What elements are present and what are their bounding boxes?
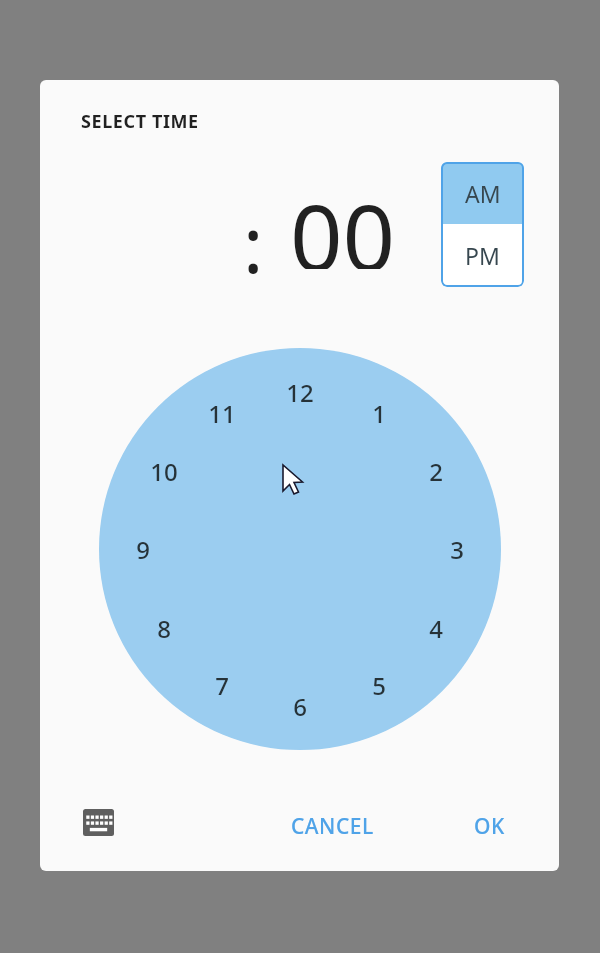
button[interactable]: 00	[290, 183, 405, 279]
staticText: 5	[372, 669, 386, 702]
staticText: 4	[429, 612, 443, 645]
button[interactable]: AM	[441, 162, 524, 224]
staticText: 7	[215, 669, 229, 702]
staticText: SELECT TIME	[81, 109, 199, 134]
staticText: AM	[465, 178, 501, 209]
staticText: 00	[290, 173, 396, 269]
staticText: 11	[208, 397, 236, 430]
staticText: :	[243, 192, 264, 296]
staticText: PM	[465, 240, 500, 271]
button[interactable]: Switch to text input mode	[76, 802, 120, 842]
staticText: CANCEL	[291, 812, 374, 841]
staticText: 6	[293, 690, 307, 723]
button[interactable]: CANCEL	[285, 807, 379, 845]
staticText: 2	[429, 455, 443, 488]
button[interactable]: PM	[441, 224, 524, 287]
staticText: OK	[474, 812, 505, 841]
staticText: 8	[157, 612, 171, 645]
staticText: 10	[150, 455, 178, 488]
staticText: 12	[286, 376, 314, 409]
staticText: 3	[450, 533, 464, 566]
button[interactable]: 1	[99, 348, 501, 750]
staticText: 9	[136, 533, 150, 566]
staticText: 1	[372, 397, 386, 430]
button[interactable]: OK	[464, 807, 514, 845]
